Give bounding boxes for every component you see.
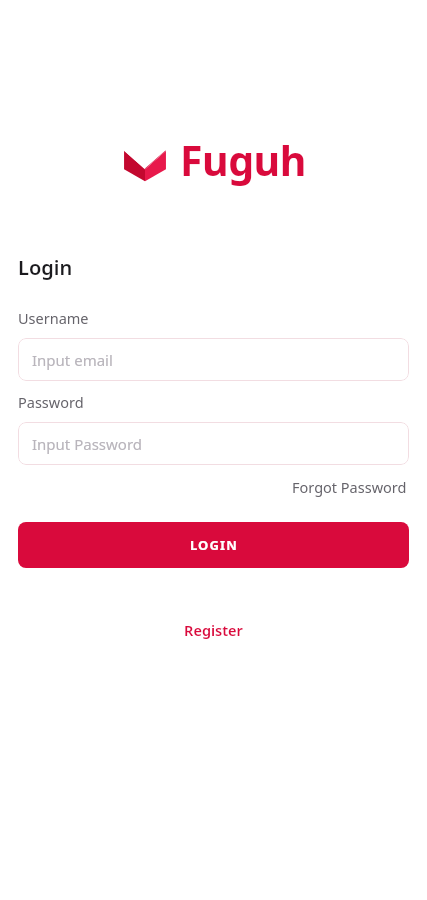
staticText: Forgot Password <box>292 477 407 497</box>
button[interactable]: LOGIN <box>18 522 409 568</box>
button[interactable]: Register <box>178 616 249 644</box>
staticText: Login <box>18 254 73 281</box>
staticText: Password <box>18 392 84 412</box>
button[interactable]: Input Password <box>18 422 409 465</box>
staticText: Input Password <box>32 434 143 454</box>
button[interactable]: Forgot Password <box>290 474 409 500</box>
staticText: Input email <box>32 350 113 370</box>
other: Fuguh logo <box>122 137 168 183</box>
staticText: Username <box>18 308 89 328</box>
staticText: Register <box>184 620 243 640</box>
button[interactable]: Input email <box>18 338 409 381</box>
staticText: LOGIN <box>190 536 238 554</box>
staticText: Fuguh <box>180 132 306 188</box>
